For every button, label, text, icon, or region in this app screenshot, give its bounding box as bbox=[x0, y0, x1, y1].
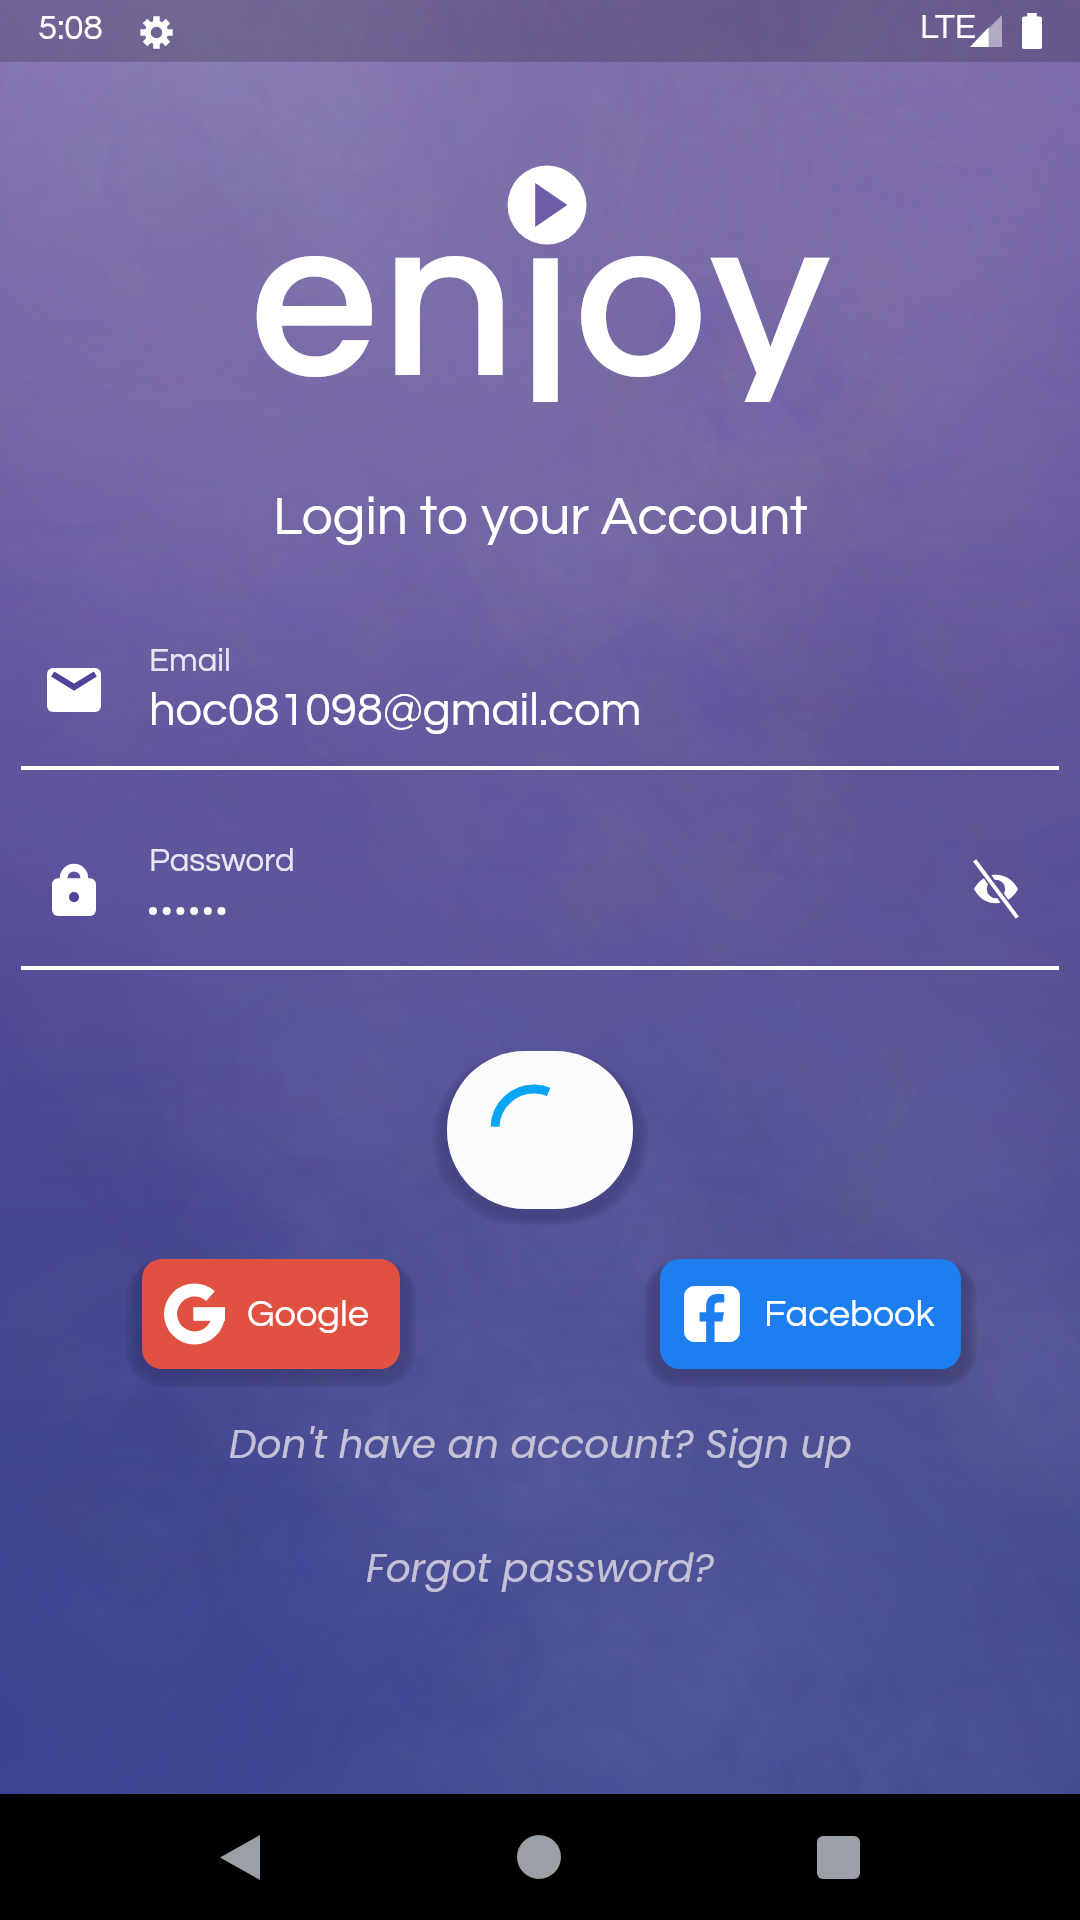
staticText: Password bbox=[149, 844, 295, 878]
staticText: Google bbox=[247, 1295, 369, 1334]
button[interactable]: Facebook bbox=[660, 1259, 961, 1369]
button[interactable]: Don't have an account? Sign up bbox=[229, 1417, 852, 1472]
staticText: 5:08 bbox=[38, 10, 103, 46]
button[interactable]: Home bbox=[449, 1805, 629, 1909]
staticText: Login to your Account bbox=[273, 489, 808, 546]
button[interactable]: Back bbox=[150, 1805, 330, 1909]
staticText: LTE bbox=[920, 9, 976, 45]
staticText: Facebook bbox=[764, 1295, 935, 1334]
staticText: hoc081098@gmail.com bbox=[149, 686, 642, 734]
button[interactable]: Google bbox=[142, 1259, 400, 1369]
button[interactable]: Forgot password? bbox=[366, 1541, 715, 1596]
button[interactable]: Show password bbox=[961, 854, 1031, 924]
button[interactable]: Recent apps bbox=[748, 1805, 928, 1909]
staticText: enjoy bbox=[249, 152, 832, 402]
button[interactable]: Login bbox=[447, 1051, 633, 1209]
staticText: Email bbox=[149, 644, 231, 678]
